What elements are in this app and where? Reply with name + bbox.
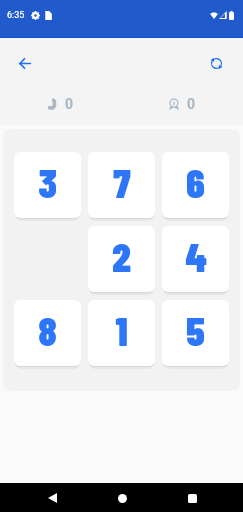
staticText: 2 <box>112 232 131 280</box>
button[interactable]: Restart <box>201 48 232 79</box>
staticText: 4 <box>185 232 207 280</box>
button[interactable]: Back <box>38 484 66 512</box>
staticText: 1 <box>115 306 128 354</box>
staticText: 0 <box>65 96 74 112</box>
button[interactable]: Back <box>9 48 40 79</box>
staticText: 5 <box>186 306 205 354</box>
button[interactable]: 8 <box>14 300 81 366</box>
staticText: 6 <box>186 158 205 206</box>
button[interactable]: 2 <box>88 226 155 292</box>
staticText: 3 <box>38 158 57 206</box>
button[interactable]: 1 <box>88 300 155 366</box>
button[interactable]: 4 <box>162 226 229 292</box>
button[interactable]: Recents <box>178 484 206 512</box>
staticText: 8 <box>38 306 57 354</box>
button[interactable]: 5 <box>162 300 229 366</box>
button[interactable]: Home <box>108 484 136 512</box>
staticText: 0 <box>187 96 196 112</box>
button[interactable]: 6 <box>162 152 229 218</box>
button[interactable]: 7 <box>88 152 155 218</box>
staticText: 6:35 <box>7 10 25 21</box>
button[interactable]: 3 <box>14 152 81 218</box>
staticText: 7 <box>113 158 131 206</box>
